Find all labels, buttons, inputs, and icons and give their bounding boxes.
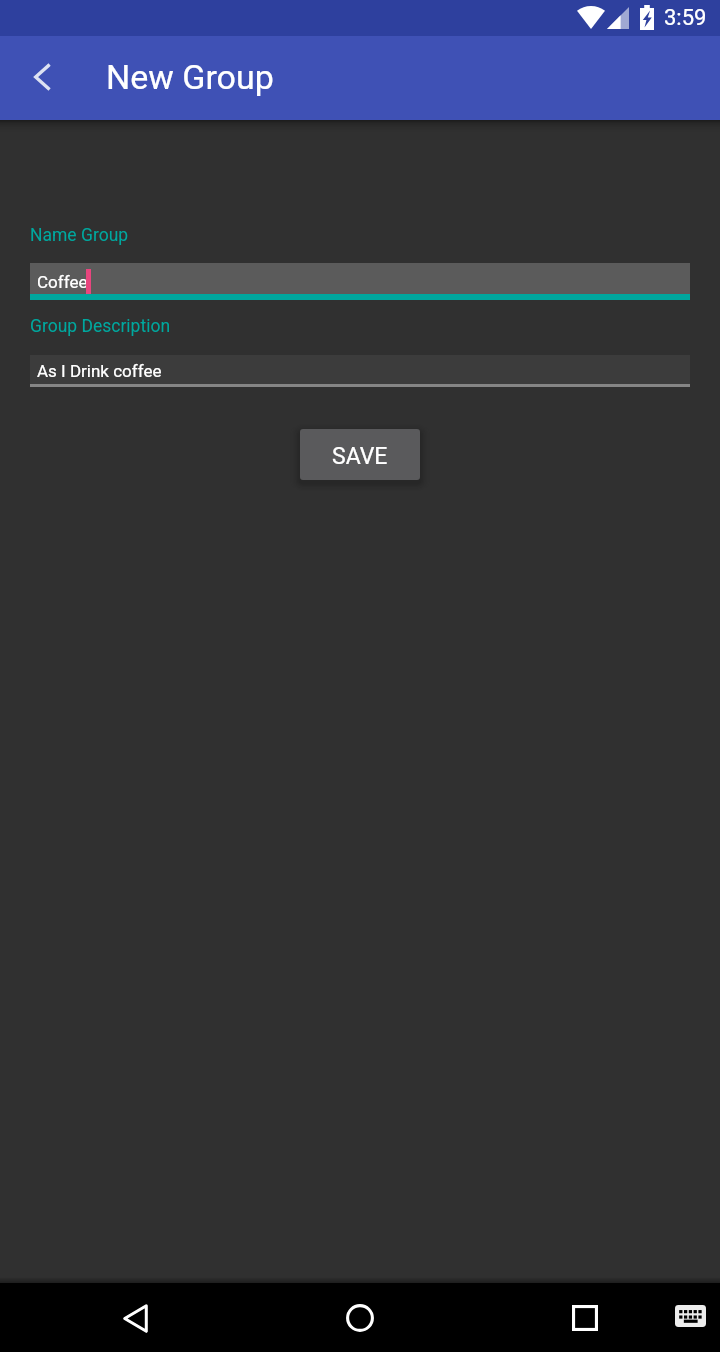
staticText: New Group <box>106 57 274 97</box>
button[interactable]: Back <box>103 1286 167 1350</box>
staticText: As I Drink coffee <box>37 361 162 381</box>
staticText: Group Description <box>30 316 171 337</box>
button[interactable]: Navigate up <box>18 53 66 101</box>
button[interactable]: Change keyboard <box>663 1289 717 1343</box>
staticText: 3:59 <box>664 5 707 31</box>
staticText: Coffee <box>37 272 88 292</box>
button[interactable]: Coffee <box>30 263 690 294</box>
staticText: Name Group <box>30 225 129 246</box>
button[interactable]: SAVE <box>300 429 420 480</box>
button[interactable]: Recent apps <box>553 1286 617 1350</box>
button[interactable]: Home <box>328 1286 392 1350</box>
staticText: SAVE <box>332 443 388 470</box>
button[interactable]: As I Drink coffee <box>30 355 690 384</box>
